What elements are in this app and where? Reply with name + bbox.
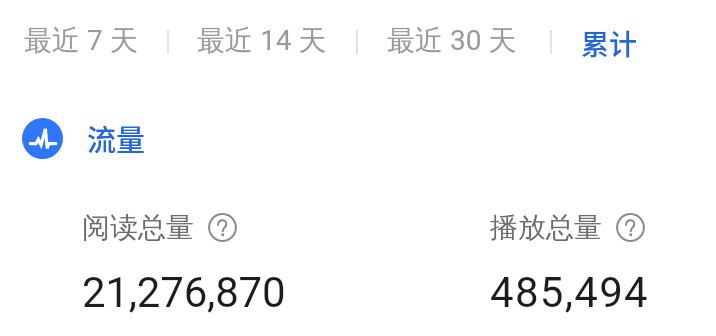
- button[interactable]: 最近 7 天: [24, 23, 138, 58]
- staticText: 累计: [581, 23, 638, 64]
- button[interactable]: 流量: [22, 117, 146, 159]
- button[interactable]: 最近 14 天: [197, 23, 327, 58]
- button[interactable]: About 阅读总量: [208, 213, 237, 242]
- button[interactable]: 累计: [581, 23, 638, 64]
- staticText: 21,276,870: [82, 268, 286, 317]
- staticText: 485,494: [490, 268, 649, 317]
- button[interactable]: 最近 30 天: [387, 23, 517, 58]
- staticText: 最近 7 天: [24, 23, 138, 58]
- staticText: 播放总量: [490, 210, 602, 245]
- staticText: 最近 14 天: [197, 23, 327, 58]
- staticText: 流量: [87, 117, 146, 159]
- staticText: 阅读总量: [82, 210, 194, 245]
- staticText: 最近 30 天: [387, 23, 517, 58]
- button[interactable]: About 播放总量: [616, 213, 645, 242]
